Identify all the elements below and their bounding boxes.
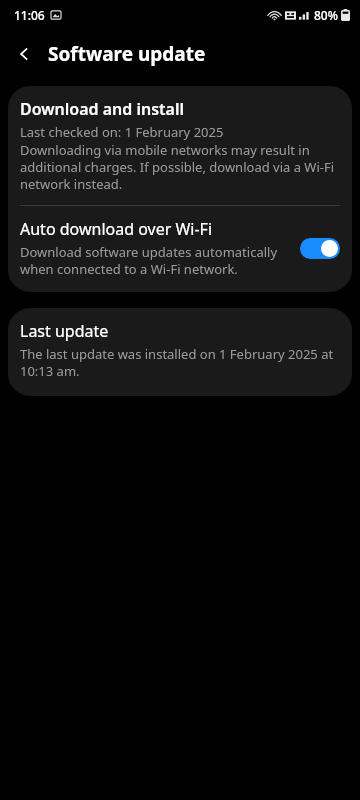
staticText: Auto download over Wi-Fi (20, 218, 213, 240)
button[interactable]: Auto download over Wi-Fi toggle, on (300, 238, 340, 259)
button[interactable]: Auto download over Wi-Fi (8, 206, 352, 292)
staticText: The last update was installed on 1 Febru… (20, 345, 340, 380)
staticText: Last update (20, 320, 109, 342)
button[interactable]: Back (6, 36, 42, 72)
staticText: Download and install (20, 98, 184, 120)
staticText: Downloading via mobile networks may resu… (20, 141, 340, 193)
staticText: Last checked on: 1 February 2025 (20, 123, 224, 141)
staticText: 11:06 (14, 7, 45, 23)
staticText: Download software updates automatically … (20, 243, 292, 278)
button[interactable]: Download and install (8, 86, 352, 205)
staticText: 80% (314, 7, 338, 23)
button[interactable]: Last update (8, 308, 352, 396)
staticText: Software update (48, 41, 206, 67)
